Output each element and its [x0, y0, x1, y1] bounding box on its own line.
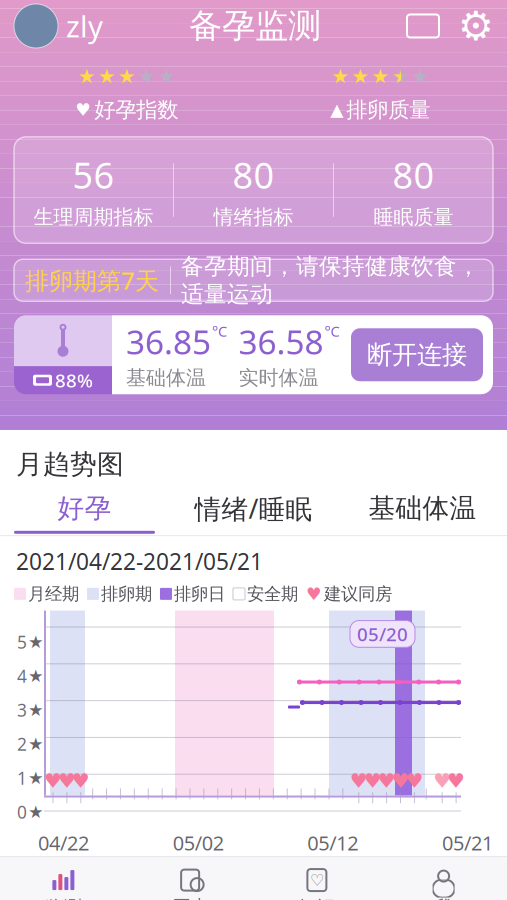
button[interactable]: 设置: [459, 9, 493, 43]
button[interactable]: 基础体温: [338, 492, 507, 534]
staticText: 排卵期: [101, 583, 152, 604]
staticText: ★: [393, 65, 411, 88]
staticText: ♥: [306, 584, 322, 604]
staticText: 4: [17, 664, 27, 687]
staticText: °C: [212, 321, 227, 341]
staticText: 我: [434, 896, 453, 900]
button[interactable]: 断开连接: [351, 328, 483, 381]
button[interactable]: 情绪/睡眠: [169, 491, 338, 535]
button[interactable]: 我: [380, 863, 507, 900]
staticText: 56: [72, 151, 114, 199]
button[interactable]: zly: [14, 4, 103, 48]
staticText: 生理周期指标: [33, 205, 153, 229]
staticText: ★: [28, 768, 44, 788]
staticText: ★: [351, 65, 369, 88]
button[interactable]: ♡: [253, 863, 380, 900]
staticText: ▲: [330, 100, 343, 120]
staticText: 情绪指标: [213, 205, 293, 229]
staticText: °C: [324, 321, 339, 341]
staticText: 80: [392, 151, 434, 199]
staticText: ♥: [391, 769, 409, 792]
staticText: ♥: [447, 769, 465, 792]
staticText: 排卵期第7天: [25, 264, 159, 296]
staticText: 80: [232, 151, 274, 199]
staticText: ♥: [75, 100, 91, 120]
staticText: 05/20: [357, 621, 408, 646]
staticText: ★: [138, 65, 156, 88]
staticText: 1: [17, 766, 27, 789]
staticText: 04/22: [38, 829, 89, 856]
staticText: 月经期: [28, 583, 79, 604]
staticText: ♡: [310, 871, 324, 889]
staticText: 排卵日: [174, 583, 225, 604]
staticText: 断开连接: [367, 339, 467, 370]
staticText: 0: [17, 800, 27, 823]
staticText: ♥: [433, 769, 451, 792]
staticText: 基础体温: [126, 366, 206, 390]
staticText: zly: [66, 6, 103, 45]
staticText: 建议同房: [324, 583, 392, 604]
staticText: 2: [17, 732, 27, 755]
staticText: 05/12: [307, 829, 358, 856]
button[interactable]: 好孕: [0, 492, 169, 534]
staticText: 安全期: [247, 583, 298, 604]
button[interactable]: 监测: [0, 863, 127, 900]
staticText: ★: [158, 65, 176, 88]
staticText: ★: [331, 65, 349, 88]
button[interactable]: 历史: [127, 864, 254, 900]
staticText: ★: [78, 65, 96, 88]
staticText: 88%: [55, 368, 93, 393]
staticText: ★: [28, 802, 44, 822]
staticText: ✉: [413, 13, 432, 39]
staticText: ★: [371, 65, 389, 88]
staticText: 睡眠质量: [373, 205, 453, 229]
staticText: 5: [17, 630, 27, 653]
staticText: 36.58: [238, 319, 323, 364]
staticText: 历史: [171, 896, 209, 900]
staticText: ★: [28, 632, 44, 652]
staticText: ♥: [364, 769, 382, 792]
staticText: 备孕监测: [189, 5, 321, 46]
staticText: ★: [98, 65, 116, 88]
staticText: ♥: [405, 769, 423, 792]
staticText: 排卵质量: [346, 97, 430, 123]
staticText: 05/21: [442, 829, 493, 856]
staticText: ⚙: [458, 3, 494, 49]
staticText: 知识: [298, 896, 336, 900]
staticText: ♥: [350, 769, 368, 792]
staticText: 月趋势图: [16, 448, 124, 481]
staticText: 监测: [44, 896, 82, 900]
staticText: ♥: [58, 769, 76, 792]
staticText: 05/02: [173, 829, 224, 856]
staticText: ★: [118, 65, 136, 88]
staticText: ★: [28, 734, 44, 754]
staticText: 情绪/睡眠: [194, 491, 312, 526]
button[interactable]: 消息: [407, 14, 439, 37]
staticText: 基础体温: [368, 492, 476, 525]
staticText: ★: [28, 700, 44, 720]
staticText: 3: [17, 698, 27, 721]
staticText: ★: [411, 65, 429, 88]
staticText: 好孕: [57, 492, 111, 525]
staticText: 实时体温: [238, 366, 318, 390]
staticText: ★: [391, 65, 409, 88]
staticText: 2021/04/22-2021/05/21: [16, 546, 263, 576]
staticText: ♥: [72, 769, 90, 792]
staticText: 备孕期间，请保持健康饮食，适量运动: [181, 252, 480, 308]
staticText: 好孕指数: [94, 97, 178, 123]
staticText: ♥: [44, 769, 62, 792]
staticText: ★: [28, 666, 44, 686]
staticText: 36.85: [126, 319, 211, 364]
staticText: ♥: [378, 769, 396, 792]
